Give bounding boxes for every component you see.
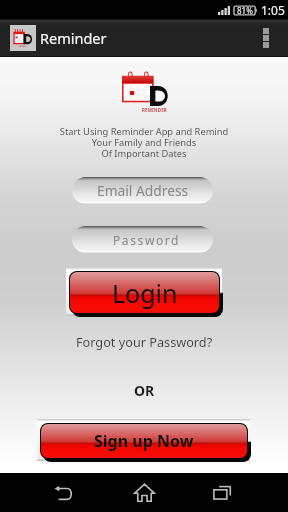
- staticText: Password: [113, 232, 181, 248]
- staticText: 1:05: [261, 2, 285, 18]
- staticText: Sign up Now: [94, 430, 194, 452]
- button[interactable]: Back: [42, 473, 84, 512]
- staticText: Email Address: [97, 181, 189, 200]
- staticText: Reminder: [40, 28, 107, 48]
- staticText: OR: [134, 381, 155, 400]
- staticText: Forgot your Password?: [76, 333, 213, 350]
- button[interactable]: More options: [251, 19, 281, 57]
- button[interactable]: Sign up Now: [41, 424, 247, 458]
- staticText: REMINDER: [142, 107, 167, 113]
- staticText: Start Using Reminder App and Remind Your…: [0, 125, 288, 159]
- button[interactable]: Login: [70, 272, 219, 313]
- button[interactable]: Password: [72, 226, 213, 253]
- button[interactable]: Forgot your Password?: [72, 331, 217, 352]
- button[interactable]: Recent apps: [201, 473, 243, 512]
- staticText: 81%: [237, 5, 253, 16]
- button[interactable]: Email Address: [72, 177, 213, 204]
- staticText: Login: [112, 276, 178, 310]
- button[interactable]: Home: [123, 473, 165, 512]
